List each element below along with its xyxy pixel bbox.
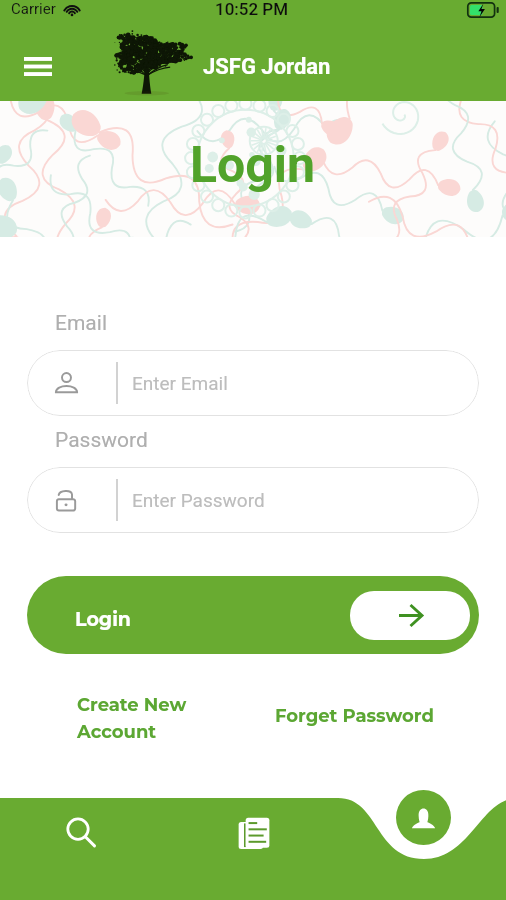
button[interactable]: News (230, 809, 278, 857)
staticText: Password (55, 428, 148, 453)
staticText: Create New Account (77, 694, 187, 742)
button[interactable]: Search (57, 809, 105, 857)
staticText: Login (75, 608, 132, 631)
staticText: Enter Email (132, 372, 228, 394)
staticText: Carrier (11, 0, 56, 18)
staticText: 10:52 PM (215, 0, 289, 19)
staticText: Email (55, 311, 107, 336)
button[interactable]: Forget Password (275, 705, 434, 727)
button[interactable]: Profile (396, 790, 451, 845)
staticText: Enter Password (132, 489, 265, 511)
button[interactable]: Enter Email (27, 350, 479, 416)
button[interactable]: Menu (14, 42, 62, 90)
staticText: JSFG Jordan (203, 54, 331, 80)
button[interactable]: Enter Password (27, 467, 479, 533)
staticText: Forget Password (275, 705, 434, 727)
button[interactable]: Login (27, 576, 479, 654)
button[interactable]: Create New Account (77, 694, 187, 742)
staticText: Login (190, 136, 316, 195)
